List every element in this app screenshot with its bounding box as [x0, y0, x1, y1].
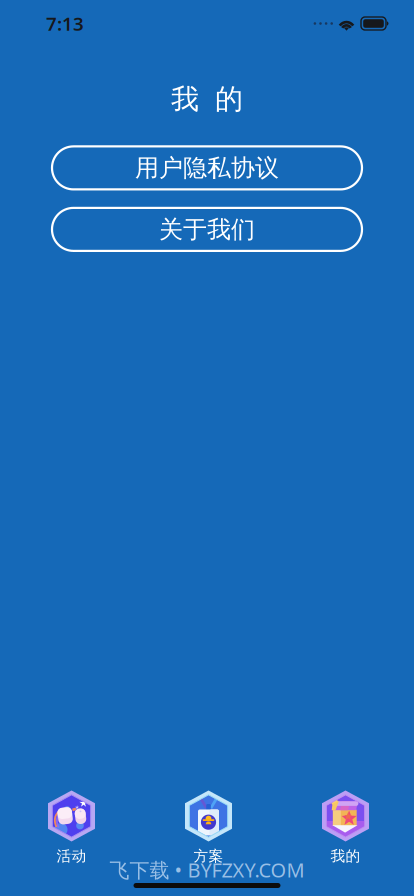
staticText: 我的	[330, 847, 360, 865]
button[interactable]: 活动	[3, 790, 140, 865]
staticText: 我 的	[171, 82, 243, 116]
staticText: 用户隐私协议	[135, 153, 279, 183]
staticText: 方案	[193, 847, 223, 865]
button[interactable]: 方案	[140, 790, 277, 865]
staticText: 7:13	[46, 11, 84, 36]
staticText: 关于我们	[159, 215, 255, 244]
staticText: 活动	[56, 847, 86, 865]
button[interactable]: 关于我们	[52, 208, 362, 251]
button[interactable]: 我的	[277, 790, 414, 865]
button[interactable]: 用户隐私协议	[52, 146, 362, 189]
staticText: 飞下载 • BYFZXY.COM	[109, 856, 304, 883]
